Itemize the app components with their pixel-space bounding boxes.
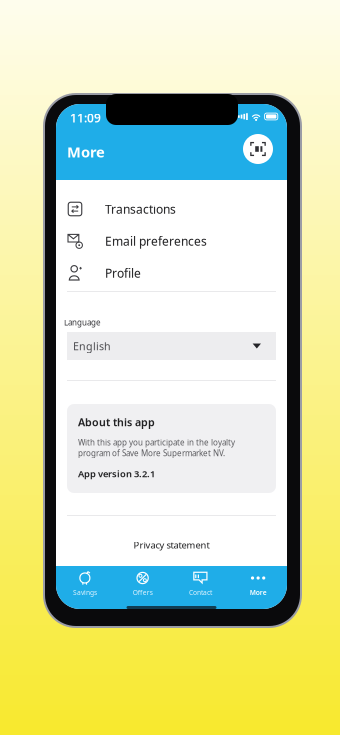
button[interactable]: Email preferences <box>56 225 287 257</box>
button[interactable]: Contact <box>171 570 229 600</box>
button[interactable]: Offers <box>114 570 172 600</box>
button[interactable]: English <box>67 332 276 360</box>
staticText: Savings <box>73 588 97 597</box>
staticText: Contact <box>189 588 212 597</box>
staticText: Profile <box>105 265 141 281</box>
staticText: Transactions <box>105 201 176 217</box>
staticText: 11:09 <box>70 110 101 126</box>
button[interactable]: Profile <box>56 257 287 289</box>
staticText: More <box>67 142 105 161</box>
staticText: App version 3.2.1 <box>78 467 155 480</box>
staticText: More <box>250 588 267 597</box>
staticText: Email preferences <box>105 233 207 249</box>
staticText: English <box>73 339 111 353</box>
staticText: Offers <box>133 588 153 597</box>
button[interactable]: Savings <box>56 570 114 600</box>
staticText: Language <box>64 317 101 328</box>
button[interactable]: More <box>229 570 287 600</box>
staticText: With this app you participate in the loy… <box>78 437 235 458</box>
staticText: About this app <box>78 415 155 429</box>
button[interactable]: Privacy statement <box>67 538 276 552</box>
button[interactable]: Scan code <box>243 134 273 164</box>
staticText: Privacy statement <box>133 539 209 551</box>
button[interactable]: Transactions <box>56 193 287 225</box>
